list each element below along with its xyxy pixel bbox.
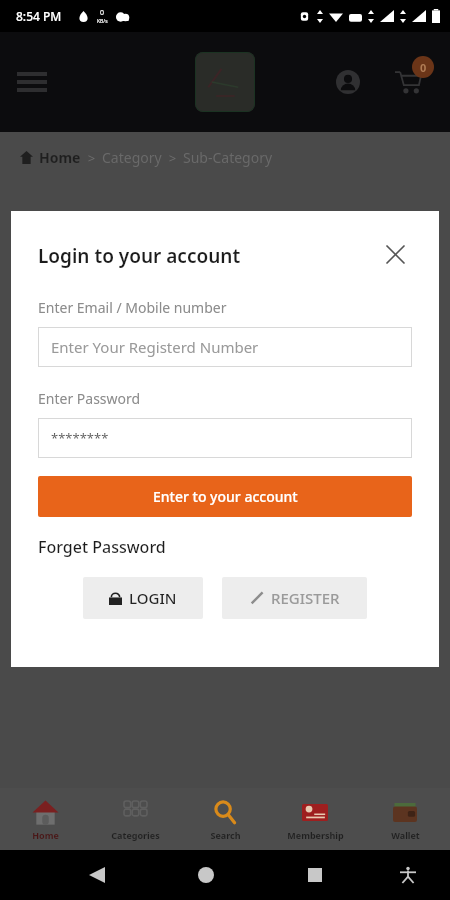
button[interactable]: Logo [195,52,255,112]
button[interactable]: Category [102,148,162,167]
button[interactable]: Close [378,237,412,271]
staticText: Enter Your Registerd Number [51,337,259,357]
button[interactable]: Wallet [360,788,450,850]
staticText: KB/s [97,18,108,25]
button[interactable]: Membership [270,788,360,850]
staticText: Login to your account [38,243,241,269]
button[interactable]: Home [186,855,226,895]
staticText: LOGIN [129,588,177,608]
button[interactable]: LOGIN [83,577,203,619]
staticText: Categories [111,829,160,841]
staticText: Search [210,829,241,841]
button[interactable]: Account [326,60,370,104]
staticText: > [81,149,102,167]
button[interactable]: Categories [90,788,180,850]
button[interactable]: Cart [384,58,432,106]
button[interactable]: Home [0,788,90,850]
button[interactable]: Accessibility [390,857,426,893]
staticText: Enter Email / Mobile number [38,298,227,317]
button[interactable]: Enter to your account [38,476,412,517]
staticText: 0 [100,8,105,18]
button[interactable]: Search [180,788,270,850]
button[interactable]: Home [39,148,81,167]
staticText: 8:54 PM [16,8,62,24]
staticText: Enter to your account [153,487,298,506]
button[interactable]: Menu [10,60,54,104]
staticText: REGISTER [271,588,340,608]
button[interactable]: Sub-Category [183,148,273,167]
staticText: ******** [51,429,109,447]
staticText: Home [32,829,59,841]
staticText: Wallet [391,829,420,841]
staticText: Membership [287,829,344,841]
staticText: > [162,149,183,167]
staticText: 0 [420,60,427,75]
button[interactable]: Recents [295,855,335,895]
button[interactable]: Forget Password [38,536,166,558]
button[interactable]: REGISTER [222,577,367,619]
button[interactable]: ******** [38,418,412,458]
button[interactable]: Enter Your Registerd Number [38,327,412,367]
button[interactable]: Back [77,855,117,895]
staticText: Enter Password [38,389,141,408]
